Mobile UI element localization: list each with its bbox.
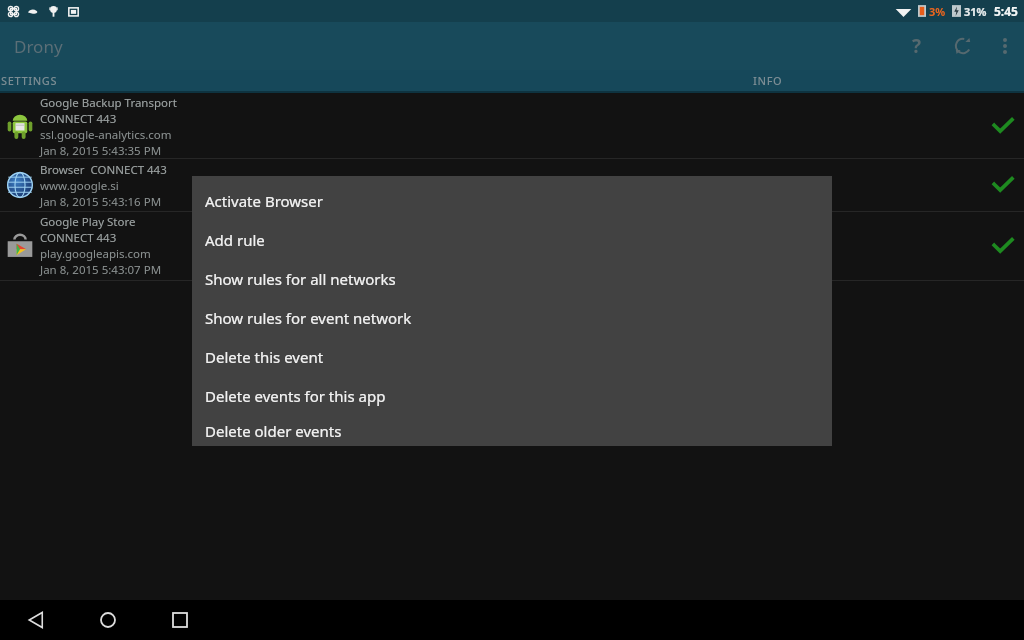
button[interactable]: More options — [986, 23, 1024, 69]
button[interactable]: Show rules for all networks — [192, 259, 832, 298]
button[interactable]: Back — [0, 600, 71, 640]
staticText: Jan 8, 2015 5:43:16 PM — [40, 194, 162, 210]
staticText: Add rule — [205, 230, 265, 250]
button[interactable]: Delete events for this app — [192, 376, 832, 415]
staticText: play.googleapis.com — [40, 246, 151, 262]
staticText: 3% — [929, 4, 946, 19]
staticText: Delete events for this app — [205, 386, 386, 406]
staticText: Browser CONNECT 443 — [40, 162, 167, 178]
button[interactable]: Show rules for event network — [192, 298, 832, 337]
button[interactable]: Activate Browser — [192, 181, 832, 220]
staticText: Show rules for all networks — [205, 269, 396, 289]
staticText: CONNECT 443 — [40, 230, 117, 246]
button[interactable]: Google Backup Transport — [0, 93, 1024, 158]
button[interactable]: SETTINGS — [0, 70, 512, 91]
staticText: Jan 8, 2015 5:43:35 PM — [40, 143, 162, 159]
staticText: Delete this event — [205, 347, 324, 367]
button[interactable]: Home — [71, 600, 144, 640]
staticText: Google Backup Transport — [40, 95, 177, 111]
staticText: SETTINGS — [1, 73, 58, 88]
button[interactable]: Help — [894, 23, 940, 69]
button[interactable]: Add rule — [192, 220, 832, 259]
staticText: INFO — [753, 73, 783, 88]
staticText: CONNECT 443 — [40, 111, 117, 127]
staticText: 5:45 — [994, 3, 1018, 19]
staticText: www.google.si — [40, 178, 119, 194]
staticText: ssl.google-analytics.com — [40, 127, 172, 143]
button[interactable]: Google Play Store — [0, 212, 1024, 280]
staticText: ? — [912, 33, 922, 59]
staticText: Google Play Store — [40, 214, 136, 230]
staticText: Delete older events — [205, 421, 342, 441]
button[interactable]: Browser CONNECT 443 — [0, 159, 1024, 211]
staticText: Jan 8, 2015 5:43:07 PM — [40, 262, 162, 278]
button[interactable]: Delete this event — [192, 337, 832, 376]
staticText: Activate Browser — [205, 191, 323, 211]
staticText: Drony — [14, 35, 63, 58]
button[interactable]: Delete older events — [192, 415, 832, 446]
button[interactable]: INFO — [512, 70, 1024, 91]
button[interactable]: Refresh — [940, 23, 986, 69]
staticText: 31% — [964, 4, 987, 19]
button[interactable]: Recent apps — [144, 600, 216, 640]
staticText: Show rules for event network — [205, 308, 412, 328]
